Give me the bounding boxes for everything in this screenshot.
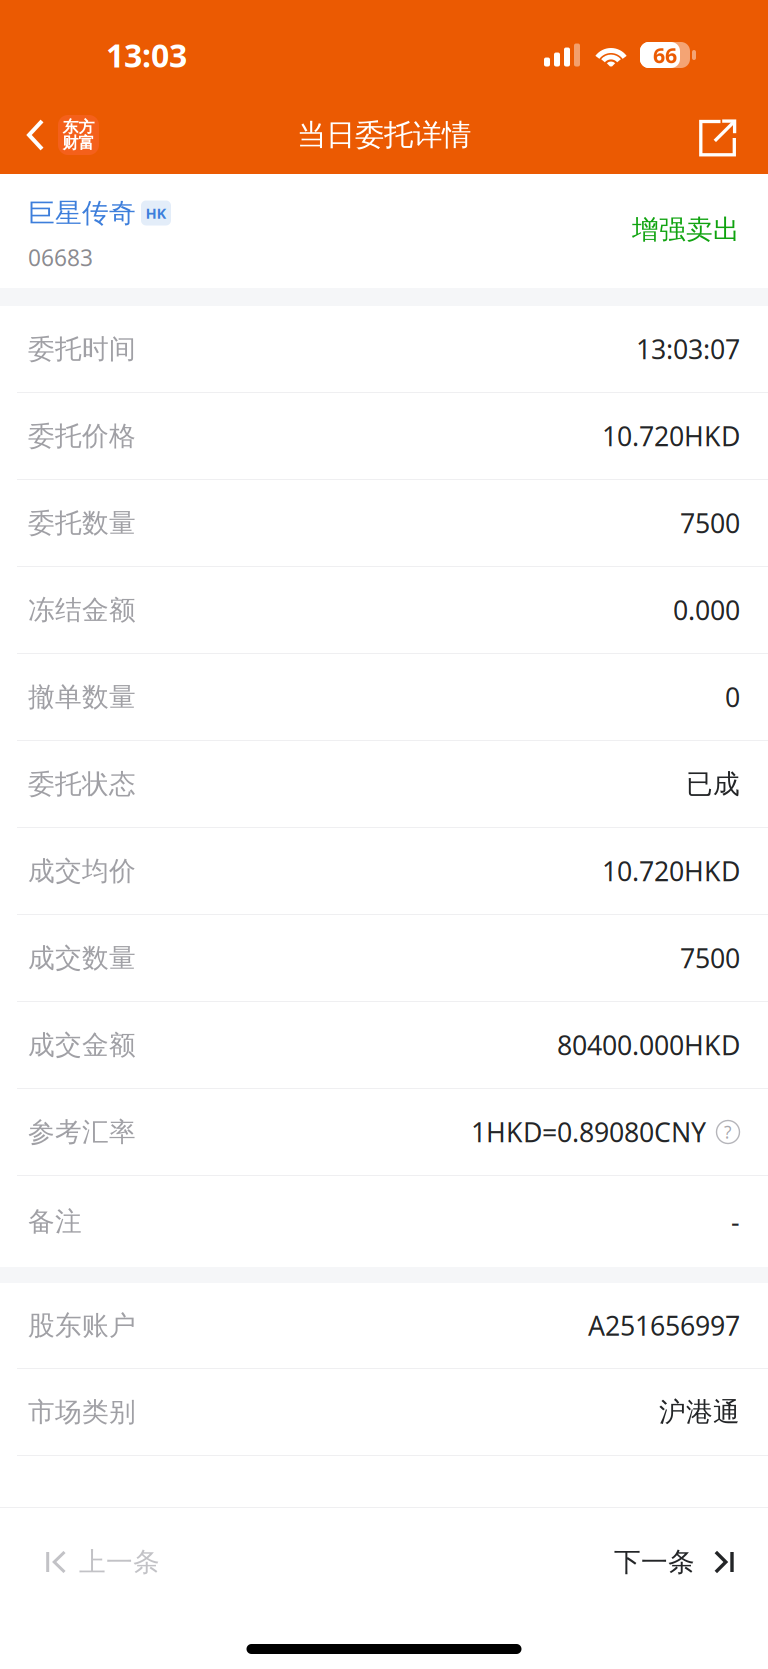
staticText: 委托状态 (28, 767, 136, 801)
staticText: 沪港通 (659, 1395, 740, 1429)
staticText: 66 (653, 40, 677, 70)
staticText: 0.000 (673, 592, 740, 628)
staticText: - (731, 1203, 740, 1240)
staticText: 10.720HKD (602, 418, 740, 454)
staticText: 1HKD=0.89080CNY (471, 1114, 706, 1150)
staticText: 06683 (28, 242, 93, 273)
staticText: 增强卖出 (632, 213, 740, 246)
staticText: 7500 (680, 505, 740, 541)
staticText: 委托时间 (28, 332, 136, 366)
staticText: 下一条 (614, 1545, 695, 1579)
staticText: 股东账户 (28, 1309, 136, 1342)
staticText: 冻结金额 (28, 593, 136, 627)
staticText: 7500 (680, 940, 740, 976)
staticText: HK (145, 203, 166, 223)
staticText: 当日委托详情 (297, 116, 471, 153)
staticText: 10.720HKD (602, 853, 740, 889)
button[interactable]: 汇率说明 (706, 1120, 740, 1144)
staticText: 财富 (62, 133, 94, 153)
staticText: 巨星传奇 (28, 196, 136, 230)
staticText: 委托数量 (28, 506, 136, 540)
staticText: 13:03:07 (636, 331, 740, 367)
staticText: 0 (725, 679, 740, 715)
staticText: 成交数量 (28, 941, 136, 975)
staticText: 成交金额 (28, 1028, 136, 1062)
staticText: 撤单数量 (28, 680, 136, 714)
staticText: 参考汇率 (28, 1115, 136, 1149)
staticText: 已成 (686, 767, 740, 801)
staticText: 东方 (62, 117, 94, 137)
staticText: A251656997 (588, 1307, 740, 1344)
staticText: 市场类别 (28, 1395, 136, 1429)
staticText: 80400.000HKD (557, 1027, 740, 1063)
button[interactable]: 分享 (697, 100, 768, 170)
staticText: 备注 (28, 1205, 82, 1238)
staticText: 委托价格 (28, 419, 136, 453)
button[interactable]: 下一条 (590, 1508, 768, 1616)
button[interactable]: 返回 (0, 102, 109, 168)
button[interactable]: 上一条 (0, 1508, 184, 1616)
staticText: 上一条 (79, 1545, 160, 1579)
staticText: 成交均价 (28, 854, 136, 888)
staticText: 13:03 (106, 33, 187, 77)
staticText: ? (724, 1120, 732, 1144)
